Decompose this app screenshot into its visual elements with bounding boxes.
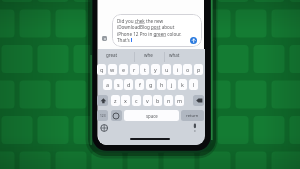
staticText: c bbox=[135, 97, 138, 104]
staticText: v bbox=[146, 97, 149, 104]
button[interactable]: m bbox=[175, 95, 184, 106]
button[interactable]: k bbox=[178, 79, 187, 90]
button[interactable]: n bbox=[164, 95, 173, 106]
staticText: x bbox=[124, 97, 127, 104]
button[interactable]: u bbox=[162, 64, 171, 75]
staticText: y bbox=[154, 66, 157, 73]
button[interactable]: g bbox=[146, 79, 155, 90]
button[interactable] bbox=[193, 95, 204, 106]
button[interactable]: x bbox=[121, 95, 130, 106]
staticText: o bbox=[186, 66, 190, 73]
button[interactable]: space bbox=[124, 110, 179, 121]
staticText: m bbox=[177, 97, 183, 104]
staticText: s bbox=[117, 81, 120, 88]
staticText: g bbox=[149, 81, 153, 88]
staticText: k bbox=[181, 81, 184, 88]
button[interactable]: e bbox=[119, 64, 128, 75]
staticText: u bbox=[165, 66, 169, 73]
button[interactable] bbox=[102, 36, 107, 41]
button[interactable]: what bbox=[169, 52, 180, 58]
staticText: That's bbox=[117, 37, 130, 43]
staticText: r bbox=[133, 66, 136, 73]
staticText: t bbox=[144, 66, 146, 73]
staticText: p bbox=[197, 66, 201, 73]
staticText: z bbox=[114, 97, 117, 104]
button[interactable] bbox=[111, 110, 122, 121]
staticText: e bbox=[122, 66, 126, 73]
button[interactable]: p bbox=[194, 64, 203, 75]
button[interactable] bbox=[97, 95, 108, 106]
staticText: i bbox=[177, 66, 179, 73]
button[interactable]: c bbox=[132, 95, 141, 106]
staticText: Did you chek the new bbox=[117, 18, 164, 24]
staticText: space bbox=[146, 113, 158, 119]
staticText: j bbox=[171, 81, 173, 88]
button[interactable] bbox=[112, 14, 202, 47]
button[interactable]: j bbox=[167, 79, 176, 90]
button[interactable]: s bbox=[114, 79, 123, 90]
button[interactable]: h bbox=[157, 79, 166, 90]
button[interactable]: d bbox=[124, 79, 133, 90]
button[interactable]: z bbox=[111, 95, 120, 106]
staticText: l bbox=[193, 81, 195, 88]
button[interactable]: t bbox=[140, 64, 149, 75]
staticText: n bbox=[167, 97, 171, 104]
button[interactable]: f bbox=[135, 79, 144, 90]
staticText: h bbox=[160, 81, 164, 88]
staticText: w bbox=[110, 66, 115, 73]
staticText: return bbox=[186, 113, 199, 119]
button[interactable]: i bbox=[173, 64, 182, 75]
staticText: iPhone 12 Pro in green colour. bbox=[117, 31, 182, 37]
button[interactable]: o bbox=[183, 64, 192, 75]
button[interactable]: w bbox=[108, 64, 117, 75]
button[interactable]: q bbox=[97, 64, 106, 75]
button[interactable]: l bbox=[189, 79, 198, 90]
button[interactable]: r bbox=[130, 64, 139, 75]
staticText: f bbox=[139, 81, 141, 88]
button[interactable]: v bbox=[143, 95, 152, 106]
staticText: q bbox=[100, 66, 104, 73]
button[interactable]: y bbox=[151, 64, 160, 75]
button[interactable]: a bbox=[103, 79, 112, 90]
button[interactable]: return bbox=[181, 110, 204, 121]
button[interactable]: 123 bbox=[97, 110, 108, 121]
button[interactable]: whe bbox=[144, 52, 153, 58]
staticText: d bbox=[127, 81, 131, 88]
button[interactable] bbox=[190, 37, 197, 44]
button[interactable]: b bbox=[153, 95, 162, 106]
button[interactable]: great bbox=[106, 52, 118, 58]
staticText: b bbox=[156, 97, 160, 104]
staticText: a bbox=[106, 81, 110, 88]
staticText: iDownloadBlog post about bbox=[117, 24, 175, 30]
staticText: 123 bbox=[100, 114, 106, 118]
